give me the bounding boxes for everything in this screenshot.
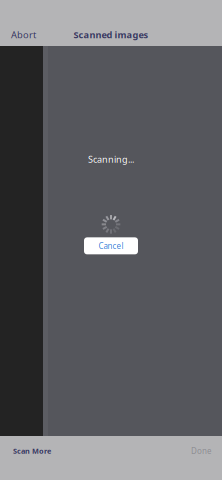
staticText: Scan More [13, 446, 51, 456]
button[interactable]: Cancel [84, 237, 138, 254]
staticText: Scanning... [88, 153, 134, 165]
button[interactable]: Abort [3, 23, 44, 46]
button[interactable]: Scan More [4, 441, 60, 461]
staticText: Cancel [98, 240, 123, 251]
staticText: Done [191, 446, 212, 456]
button[interactable]: Done [182, 441, 218, 461]
staticText: Abort [11, 28, 36, 41]
staticText: Scanned images [73, 28, 148, 41]
